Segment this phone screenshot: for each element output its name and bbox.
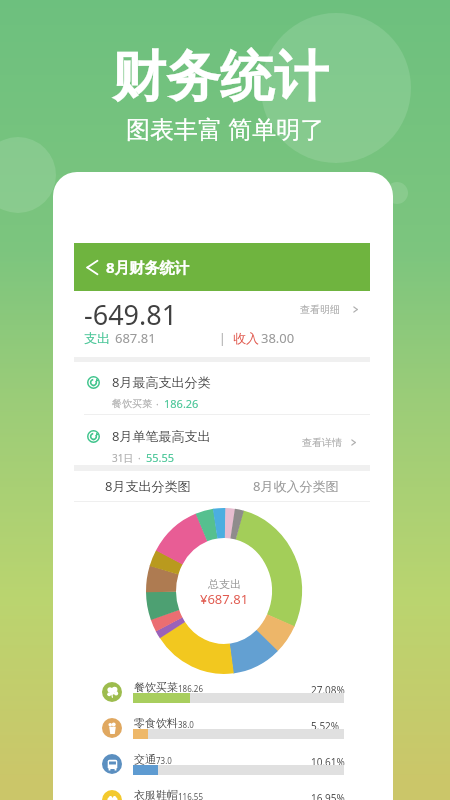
staticText: 73.0 <box>156 755 172 766</box>
staticText: 财务统计 <box>112 43 328 111</box>
staticText: 38.0 <box>178 719 194 730</box>
button[interactable]: 8月最高支出分类 <box>74 367 370 414</box>
button[interactable]: 查看明细 <box>300 303 360 316</box>
staticText: -649.81 <box>84 296 178 333</box>
staticText: 支出 <box>84 330 110 346</box>
button[interactable]: 8月支出分类图 <box>74 471 222 501</box>
staticText: 交通 <box>134 752 156 766</box>
button[interactable]: 餐饮买菜 <box>74 671 370 707</box>
staticText: 31日 <box>112 451 134 465</box>
button[interactable]: Back <box>74 243 370 291</box>
staticText: · <box>156 397 159 411</box>
staticText: 查看明细 <box>300 303 340 316</box>
button[interactable]: 查看详情 <box>302 436 358 449</box>
staticText: | <box>219 330 226 346</box>
button[interactable]: 8月收入分类图 <box>222 471 370 501</box>
staticText: 8月收入分类图 <box>253 477 339 495</box>
button[interactable]: 8月单笔最高支出 <box>74 421 370 468</box>
staticText: 10.61% <box>311 755 345 769</box>
staticText: · <box>138 451 141 465</box>
staticText: 186.26 <box>178 683 204 694</box>
button[interactable]: 交通 <box>74 743 370 779</box>
staticText: 零食饮料 <box>134 716 178 730</box>
staticText: 收入 <box>233 330 259 346</box>
staticText: 8月支出分类图 <box>105 477 191 495</box>
staticText: 687.81 <box>115 329 156 347</box>
staticText: 总支出 <box>208 577 241 591</box>
staticText: 餐饮买菜 <box>112 397 152 410</box>
staticText: 186.26 <box>164 396 199 411</box>
staticText: 38.00 <box>261 329 295 347</box>
staticText: 图表丰富 简单明了 <box>126 112 325 145</box>
staticText: 餐饮买菜 <box>134 680 178 694</box>
other: Back <box>83 259 100 276</box>
staticText: 5.52% <box>311 719 340 733</box>
staticText: 8月财务统计 <box>106 257 190 277</box>
staticText: 116.55 <box>178 791 204 800</box>
staticText: 8月单笔最高支出 <box>112 427 211 445</box>
button[interactable]: 零食饮料 <box>74 707 370 743</box>
staticText: ¥687.81 <box>200 590 249 608</box>
staticText: 8月最高支出分类 <box>112 373 211 391</box>
staticText: 查看详情 <box>302 436 342 449</box>
staticText: 衣服鞋帽 <box>134 788 178 800</box>
staticText: 55.55 <box>146 450 175 465</box>
button[interactable]: 衣服鞋帽 <box>74 779 370 800</box>
staticText: 27.08% <box>311 683 345 697</box>
staticText: 16.95% <box>311 791 345 800</box>
